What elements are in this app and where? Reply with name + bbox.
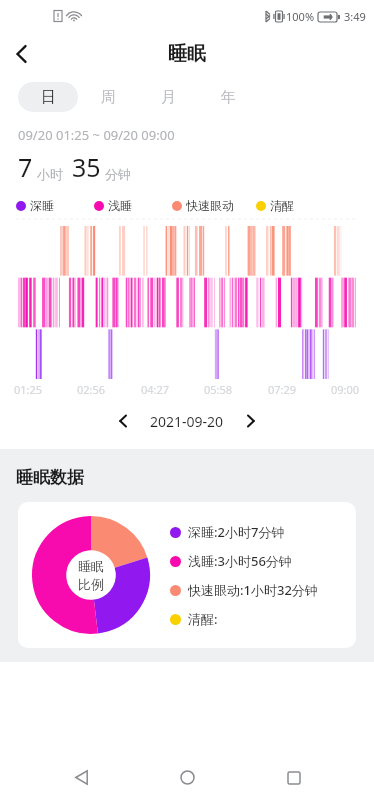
staticText: 深睡:2小时7分钟 [188,523,285,541]
staticText: 睡眠 [78,558,104,574]
staticText: 睡眠数据 [16,467,84,488]
staticText: 比例 [78,576,104,592]
button[interactable]: 日 [18,82,78,112]
staticText: 浅睡 [108,198,132,213]
button[interactable]: 月 [138,82,198,112]
staticText: 7 [18,150,33,184]
button[interactable]: 睡眠 [18,502,356,648]
button[interactable]: Next day [234,404,268,438]
button[interactable]: Back [0,32,44,76]
staticText: 浅睡:3小时56分钟 [188,552,292,570]
staticText: 2021-09-20 [150,412,224,431]
staticText: 快速眼动 [186,198,234,213]
staticText: 05:58 [204,382,233,397]
staticText: 09/20 01:25 ~ 09/20 09:00 [18,126,175,144]
staticText: 35 [72,150,101,184]
staticText: 周 [101,88,116,107]
button[interactable]: Home [161,755,213,800]
staticText: 清醒: [188,610,218,628]
staticText: 3:49 [344,9,366,24]
button[interactable]: Recent apps [268,755,320,800]
staticText: 07:29 [268,382,297,397]
staticText: 月 [161,88,176,107]
button[interactable]: 年 [198,82,258,112]
staticText: 小时 [37,166,63,182]
staticText: 02:56 [77,382,106,397]
staticText: 01:25 [14,382,43,397]
staticText: 04:27 [141,382,170,397]
staticText: 分钟 [105,166,131,182]
button[interactable]: 周 [78,82,138,112]
button[interactable]: Previous day [106,404,140,438]
staticText: 快速眼动:1小时32分钟 [188,581,318,599]
staticText: 深睡 [30,198,54,213]
staticText: 09:00 [331,382,360,397]
button[interactable]: Back [55,755,107,800]
staticText: 年 [221,88,236,107]
staticText: 100% [286,9,315,24]
staticText: 日 [41,88,56,107]
button[interactable]: 2021-09-20 [150,412,224,431]
staticText: 清醒 [270,198,294,213]
staticText: 睡眠 [168,42,206,66]
